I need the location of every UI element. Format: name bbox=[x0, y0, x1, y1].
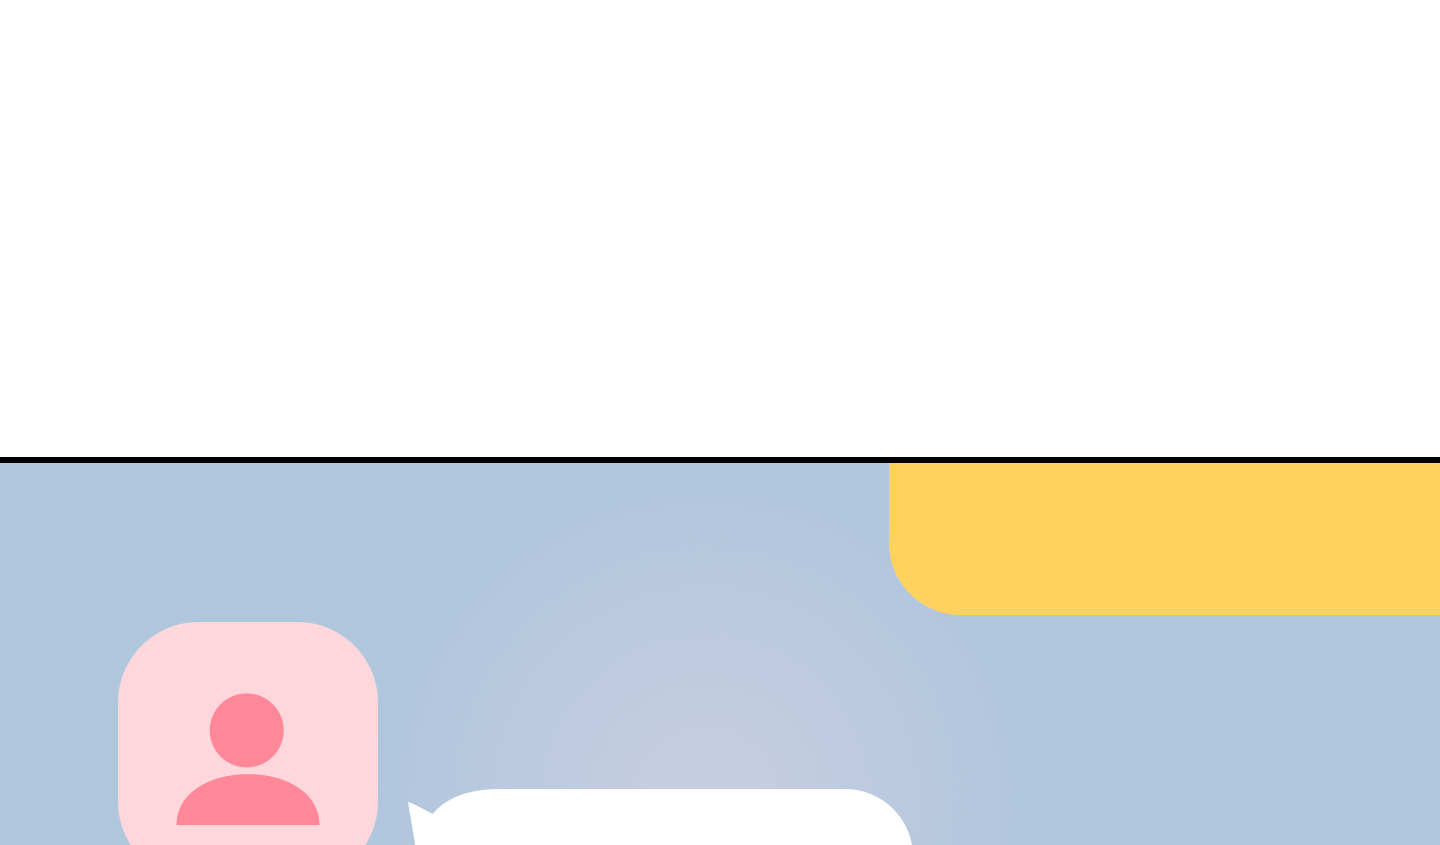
button[interactable]: Received message bbox=[408, 789, 913, 845]
button[interactable]: Sender profile picture bbox=[118, 622, 378, 845]
button[interactable]: Sent message bbox=[889, 463, 1440, 615]
